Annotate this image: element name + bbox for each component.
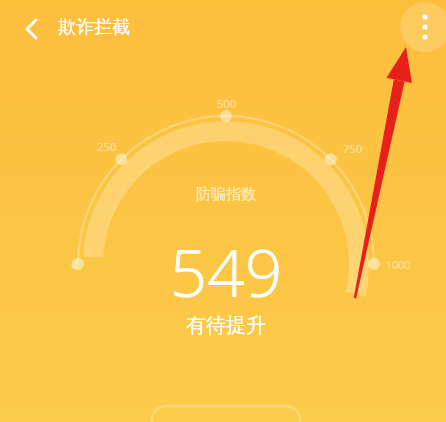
staticText: 1000 (385, 257, 411, 272)
staticText: 750 (343, 141, 362, 156)
button[interactable]: More options (400, 2, 446, 52)
staticText: 防骗指数 (196, 185, 256, 204)
button[interactable]: 欺诈拦截 (58, 16, 130, 39)
button[interactable]: Back (12, 10, 50, 48)
staticText: 0 (71, 257, 78, 272)
staticText: 549 (169, 226, 283, 316)
staticText: 有待提升 (186, 313, 266, 338)
staticText: 500 (217, 96, 236, 111)
staticText: 250 (97, 139, 116, 154)
staticText: 欺诈拦截 (58, 16, 130, 39)
